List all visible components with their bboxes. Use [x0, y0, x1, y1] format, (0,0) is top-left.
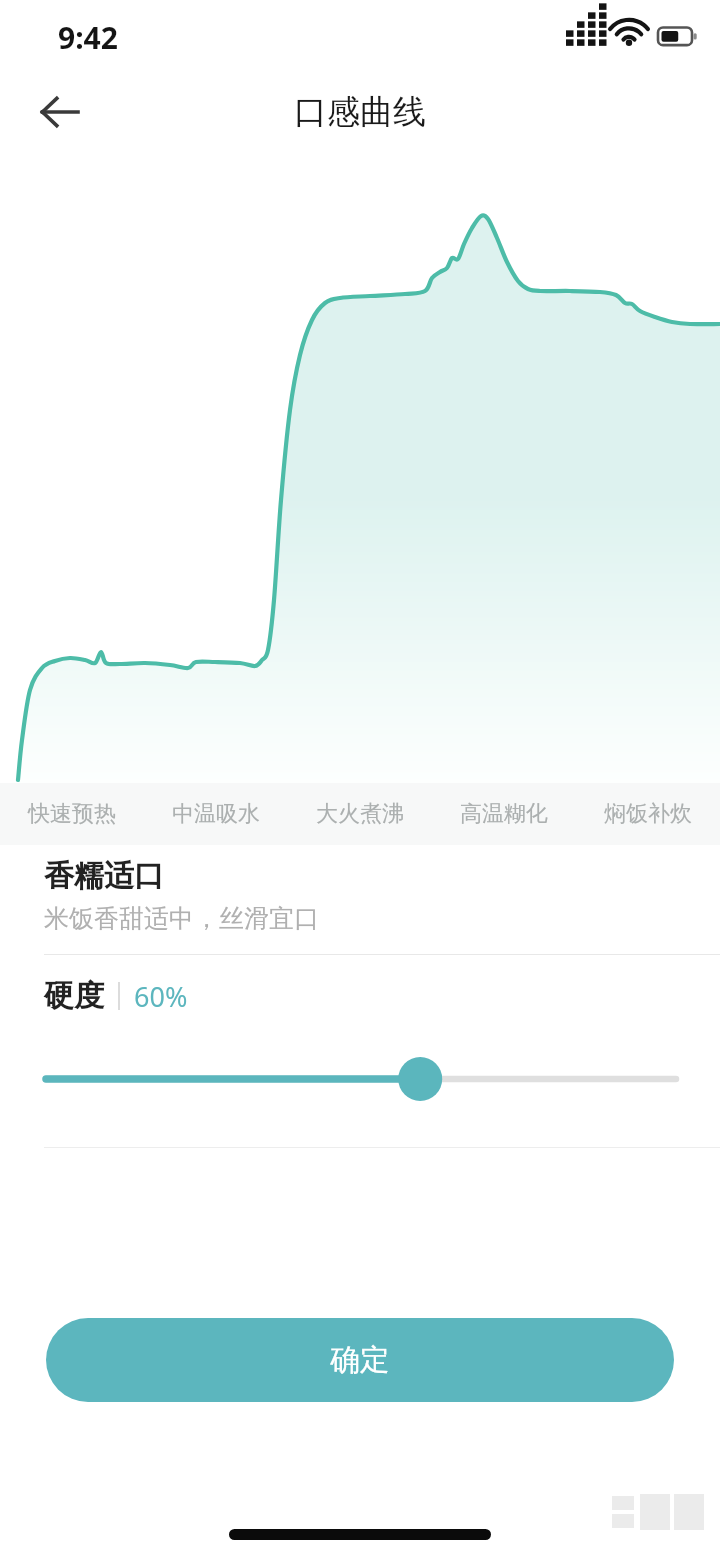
staticText: 9:42: [58, 17, 118, 58]
staticText: 高温糊化: [460, 800, 548, 828]
staticText: 60%: [134, 978, 188, 1015]
button[interactable]: 焖饭补炊: [576, 783, 720, 845]
staticText: 香糯适口: [44, 857, 164, 895]
button[interactable]: 确定: [46, 1318, 674, 1402]
button[interactable]: 高温糊化: [432, 783, 576, 845]
button[interactable]: 中温吸水: [144, 783, 288, 845]
staticText: 确定: [330, 1341, 390, 1379]
button[interactable]: Back: [26, 78, 94, 146]
staticText: 焖饭补炊: [604, 800, 692, 828]
button[interactable]: 大火煮沸: [288, 783, 432, 845]
staticText: 硬度: [44, 977, 104, 1015]
staticText: 快速预热: [28, 800, 116, 828]
staticText: 大火煮沸: [316, 800, 404, 828]
button[interactable]: 快速预热: [0, 783, 144, 845]
staticText: 口感曲线: [294, 91, 426, 133]
button[interactable]: 硬度滑块: [0, 1049, 720, 1109]
staticText: 米饭香甜适中，丝滑宜口: [44, 903, 319, 934]
staticText: 中温吸水: [172, 800, 260, 828]
